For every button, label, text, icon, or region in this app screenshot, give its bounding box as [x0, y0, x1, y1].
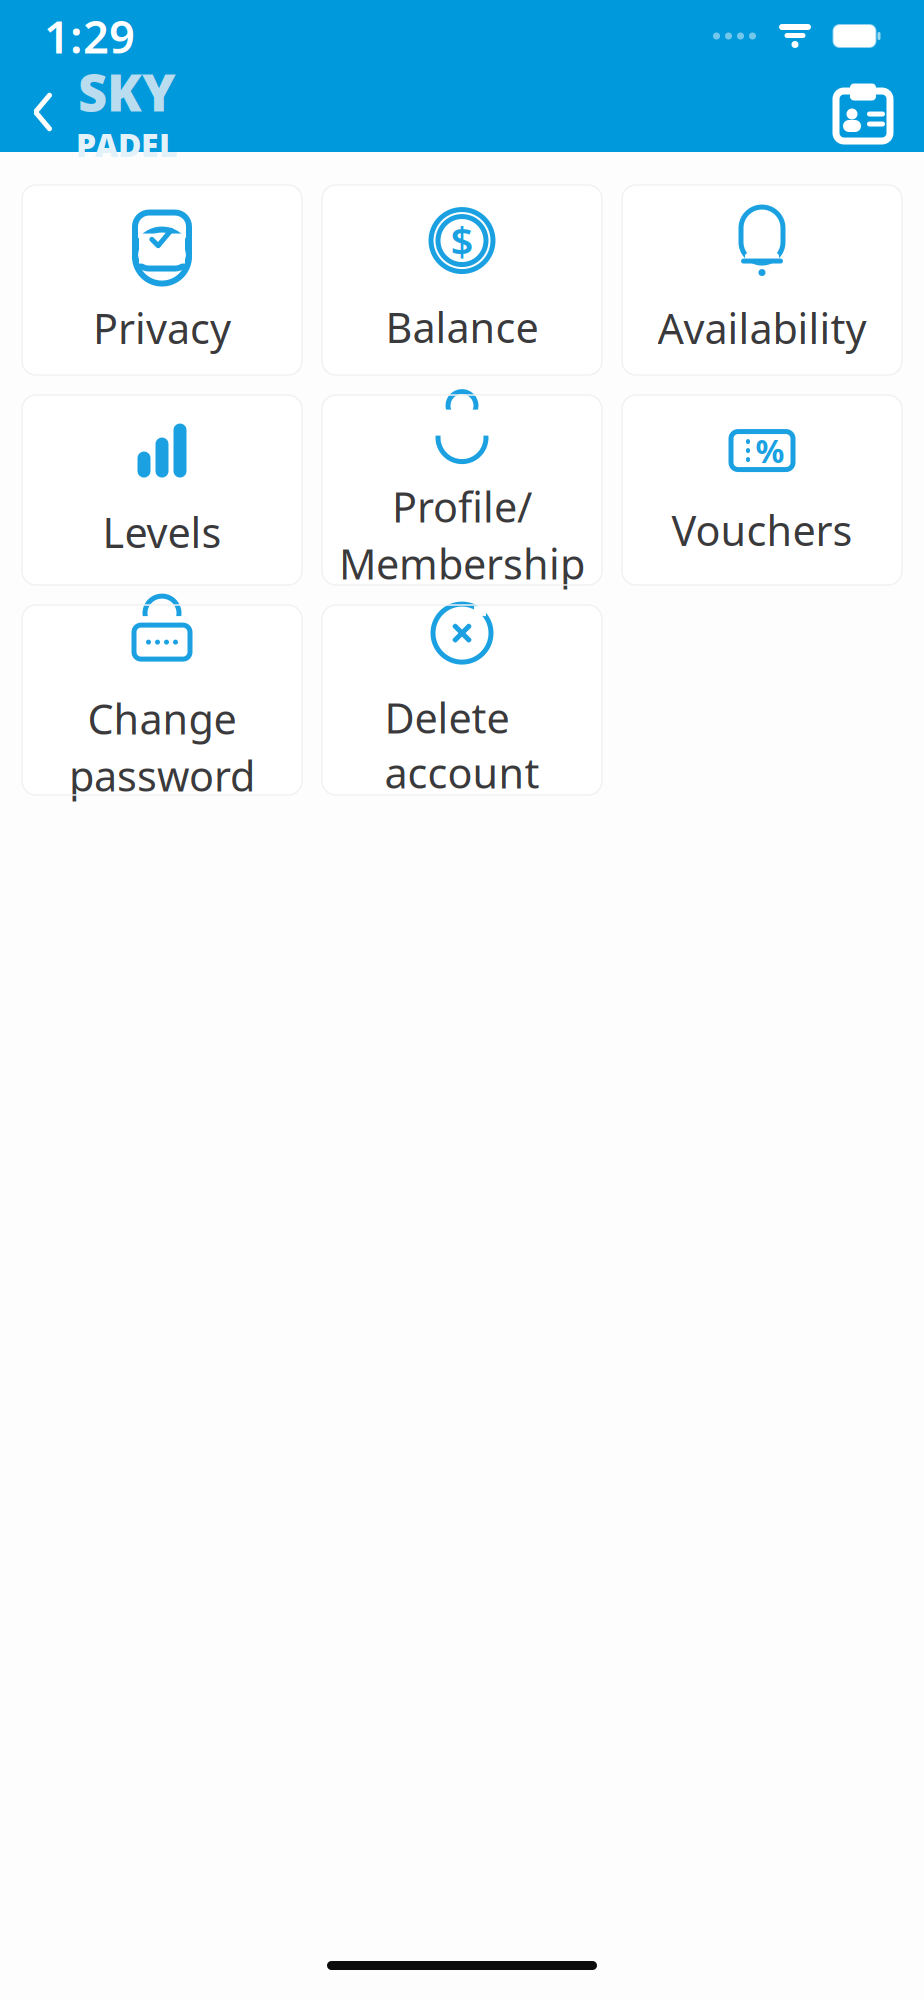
staticText: PADEL: [76, 123, 178, 166]
staticText: Privacy: [93, 301, 231, 355]
staticText: Vouchers: [671, 503, 852, 557]
staticText: 1:29: [44, 6, 135, 66]
staticText: SKY: [78, 58, 176, 125]
button[interactable]: Delete account: [322, 605, 602, 795]
staticText: password: [69, 748, 255, 803]
staticText: Availability: [657, 301, 866, 355]
staticText: %: [755, 429, 784, 472]
button[interactable]: Privacy: [22, 185, 302, 375]
staticText: Delete account: [384, 690, 539, 800]
button[interactable]: Change: [22, 605, 302, 795]
staticText: Balance: [385, 300, 538, 354]
staticText: Change: [87, 691, 236, 746]
button[interactable]: %: [622, 395, 902, 585]
button[interactable]: Availability: [622, 185, 902, 375]
staticText: $: [450, 214, 473, 267]
button[interactable]: Back: [0, 71, 182, 153]
staticText: Levels: [102, 505, 221, 559]
button[interactable]: $: [322, 185, 602, 375]
staticText: Membership: [339, 536, 585, 591]
button[interactable]: Levels: [22, 395, 302, 585]
button[interactable]: Profile/: [322, 395, 602, 585]
button[interactable]: Membership card: [832, 77, 924, 147]
staticText: Profile/: [392, 479, 532, 534]
